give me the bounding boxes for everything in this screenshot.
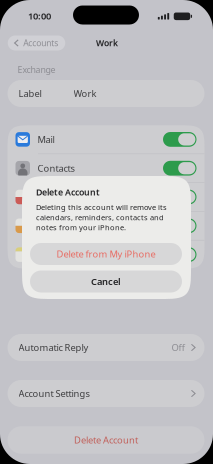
button[interactable]: Account Settings: [7, 380, 204, 407]
button[interactable]: Accounts: [8, 35, 65, 50]
button[interactable]: Calendars: [7, 183, 204, 211]
staticText: Mail: [37, 133, 54, 146]
button[interactable]: Contacts: [7, 154, 204, 182]
staticText: Work: [73, 87, 96, 100]
staticText: Delete from My iPhone: [56, 248, 155, 260]
button[interactable]: Automatic Reply: [7, 334, 204, 361]
staticText: Account Settings: [18, 387, 89, 400]
staticText: Automatic Reply: [18, 341, 88, 354]
staticText: Deleting this account will remove its ca…: [36, 202, 167, 232]
staticText: Reminders: [37, 219, 84, 232]
staticText: Notes: [37, 248, 62, 261]
staticText: Delete Account: [74, 434, 138, 446]
button[interactable]: Delete Account: [7, 426, 204, 454]
staticText: Contacts: [37, 162, 74, 174]
button[interactable]: Delete from My iPhone: [30, 243, 182, 265]
button[interactable]: Reminders: [7, 212, 204, 240]
staticText: Accounts: [23, 37, 58, 49]
staticText: 10:00: [28, 10, 51, 22]
button[interactable]: Cancel: [30, 270, 182, 292]
staticText: Cancel: [91, 275, 121, 288]
staticText: Exchange: [18, 63, 56, 75]
staticText: Off: [171, 341, 184, 354]
staticText: Delete Account: [36, 186, 100, 198]
button[interactable]: Label: [7, 80, 204, 107]
staticText: Label: [18, 87, 41, 100]
staticText: Calendars: [37, 191, 80, 203]
staticText: Work: [96, 37, 118, 49]
button[interactable]: Mail: [7, 125, 204, 153]
button[interactable]: Notes: [7, 240, 204, 269]
